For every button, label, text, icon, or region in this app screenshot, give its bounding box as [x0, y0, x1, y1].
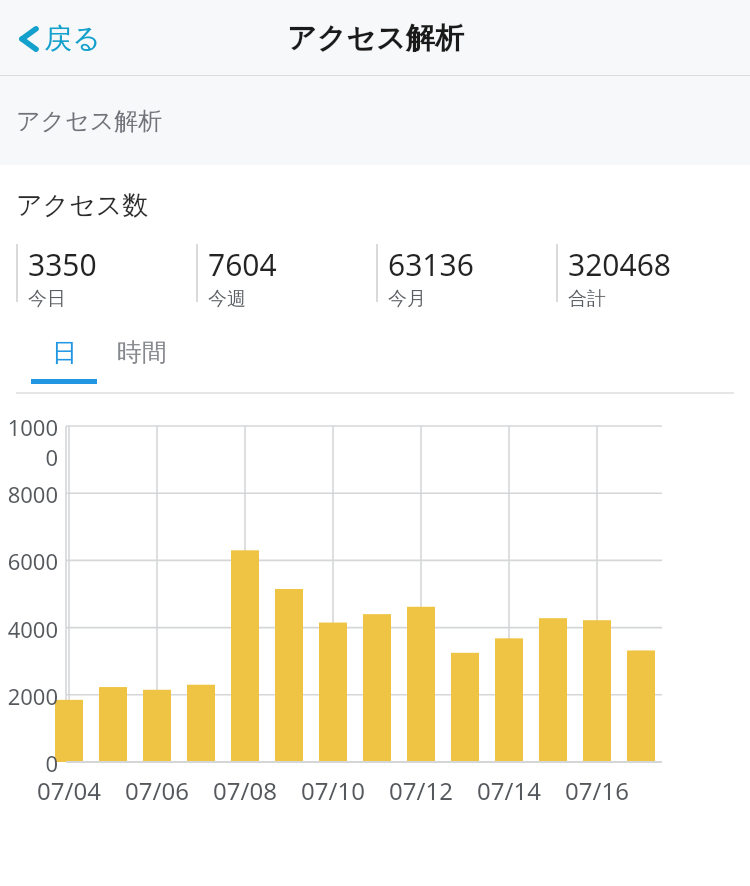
button[interactable]: 63136	[376, 244, 556, 311]
staticText: アクセス数	[16, 189, 149, 222]
staticText: 7604	[208, 244, 277, 285]
staticText: 2000	[7, 681, 58, 711]
button[interactable]: 7604	[196, 244, 376, 311]
staticText: 6000	[7, 546, 58, 576]
staticText: 0	[45, 748, 58, 778]
button[interactable]: 320468	[556, 244, 736, 311]
staticText: 合計	[568, 287, 606, 311]
staticText: 07/14	[477, 774, 541, 807]
staticText: アクセス解析	[16, 106, 163, 136]
staticText: 8000	[7, 479, 58, 509]
staticText: 4000	[7, 614, 58, 644]
staticText: アクセス解析	[287, 20, 464, 57]
button[interactable]: 日	[31, 337, 97, 368]
staticText: 07/08	[213, 774, 277, 807]
button[interactable]: 3350	[16, 244, 196, 311]
button[interactable]: 戻る	[12, 15, 107, 62]
staticText: 07/06	[125, 774, 189, 807]
staticText: 今週	[208, 287, 246, 311]
staticText: 320468	[568, 244, 671, 285]
staticText: 07/12	[389, 774, 453, 807]
staticText: 今日	[28, 287, 66, 311]
button[interactable]: 時間	[97, 337, 187, 368]
staticText: 時間	[117, 337, 167, 368]
staticText: 07/10	[301, 774, 365, 807]
staticText: 07/16	[565, 774, 629, 807]
staticText: 今月	[388, 287, 426, 311]
staticText: 07/04	[37, 774, 101, 807]
staticText: 63136	[388, 244, 474, 285]
staticText: 戻る	[44, 21, 101, 56]
staticText: 10000	[0, 412, 58, 472]
staticText: 3350	[28, 244, 97, 285]
staticText: 日	[52, 337, 77, 368]
